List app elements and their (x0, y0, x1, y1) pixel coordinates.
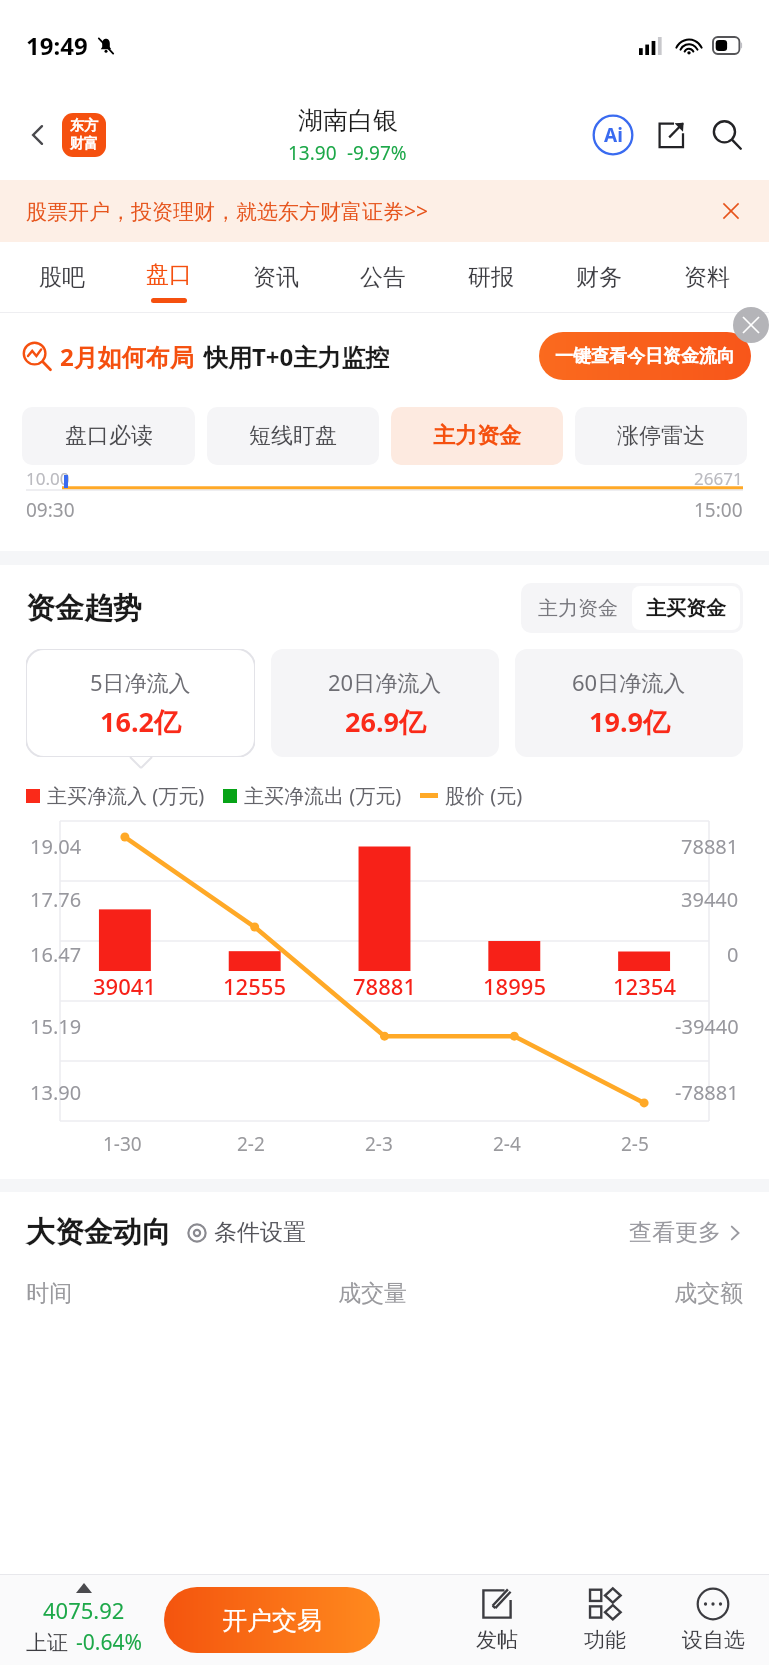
staticText: 一键查看今日资金流向 (555, 345, 735, 368)
staticText: 13.90 (30, 1079, 82, 1106)
button[interactable]: 4075.92 (16, 1583, 152, 1657)
staticText: 16.47 (30, 941, 82, 968)
button[interactable]: Close ad (733, 307, 769, 343)
staticText: 盘口必读 (65, 422, 153, 450)
staticText: 成交量 (338, 1279, 407, 1308)
staticText: 39440 (681, 886, 739, 913)
button[interactable]: Back (18, 115, 58, 155)
button[interactable]: 60日净流入 (515, 649, 743, 757)
staticText: -78881 (675, 1079, 739, 1106)
staticText: 财务 (576, 263, 622, 292)
staticText: 78881 (353, 971, 416, 1001)
button[interactable]: 主力资金 (524, 586, 632, 630)
staticText: 股吧 (39, 263, 85, 292)
button[interactable]: 功能 (565, 1587, 645, 1653)
staticText: 主买净流入 (万元) (47, 782, 205, 809)
button[interactable]: 5日净流入 (26, 649, 255, 757)
staticText: 17.76 (30, 886, 82, 913)
staticText: 09:30 (26, 497, 75, 523)
staticText: 资料 (684, 263, 730, 292)
button[interactable]: Share (647, 111, 695, 159)
staticText: 主买资金 (646, 596, 726, 621)
button[interactable]: 股票开户，投资理财，就选东方财富证券>> (0, 180, 769, 242)
button[interactable]: East Money logo (62, 113, 106, 157)
staticText: 涨停雷达 (617, 422, 705, 450)
staticText: 19.9亿 (589, 703, 670, 740)
button[interactable]: 条件设置 (185, 1218, 306, 1247)
button[interactable]: 资讯 (222, 242, 329, 313)
button[interactable]: 资料 (653, 242, 761, 313)
staticText: 上证 (26, 1630, 68, 1656)
staticText: 研报 (468, 263, 514, 292)
staticText: 财富 (70, 135, 98, 153)
staticText: 主力资金 (538, 596, 618, 621)
staticText: 39041 (93, 971, 156, 1001)
button[interactable]: 股吧 (8, 242, 115, 313)
button[interactable]: 盘口必读 (22, 407, 195, 465)
button[interactable]: 设自选 (673, 1587, 753, 1653)
button[interactable]: 一键查看今日资金流向 (539, 332, 751, 380)
staticText: 时间 (26, 1279, 72, 1308)
staticText: 18995 (483, 971, 546, 1001)
staticText: 10.00 (26, 467, 70, 485)
staticText: 13.90 (288, 140, 337, 166)
staticText: 查看更多 (629, 1218, 721, 1247)
staticText: 股票开户，投资理财，就选东方财富证券>> (26, 197, 429, 226)
button[interactable]: 财务 (545, 242, 653, 313)
staticText: 1-30 (103, 1131, 142, 1157)
button[interactable]: 主买资金 (632, 586, 740, 630)
staticText: 26.9亿 (345, 703, 426, 740)
staticText: 2-4 (493, 1131, 521, 1157)
staticText: 快用T+0主力监控 (204, 340, 390, 373)
button[interactable]: 查看更多 (629, 1218, 743, 1247)
staticText: -9.97% (347, 140, 407, 166)
button[interactable]: Close banner (711, 191, 751, 231)
staticText: 5日净流入 (90, 667, 191, 697)
staticText: Ai (604, 122, 623, 148)
staticText: 功能 (584, 1627, 626, 1653)
button[interactable]: 涨停雷达 (575, 407, 747, 465)
button[interactable]: 主力资金 (391, 407, 563, 465)
staticText: 2-3 (365, 1131, 393, 1157)
staticText: 12555 (223, 971, 286, 1001)
staticText: 主力资金 (433, 422, 521, 450)
button[interactable]: AI assistant (589, 111, 637, 159)
staticText: 资金趋势 (26, 590, 142, 627)
button[interactable]: 公告 (329, 242, 437, 313)
staticText: -0.64% (76, 1628, 142, 1657)
staticText: 短线盯盘 (249, 422, 337, 450)
staticText: 东方 (70, 117, 98, 135)
button[interactable]: 20日净流入 (271, 649, 499, 757)
staticText: 26671 (694, 467, 743, 485)
staticText: 公告 (360, 263, 406, 292)
staticText: 2-2 (237, 1131, 265, 1157)
staticText: 78881 (681, 833, 739, 860)
staticText: 2-5 (621, 1131, 649, 1157)
button[interactable]: 盘口 (115, 242, 222, 313)
staticText: 19:49 (26, 29, 88, 62)
staticText: -39440 (675, 1013, 739, 1040)
staticText: 条件设置 (214, 1218, 306, 1247)
staticText: 4075.92 (43, 1595, 125, 1625)
staticText: 主买净流出 (万元) (244, 782, 402, 809)
button[interactable]: 湖南白银 (288, 105, 407, 166)
staticText: 15:00 (694, 497, 743, 523)
staticText: 开户交易 (222, 1605, 322, 1636)
staticText: 2月如何布局 (60, 340, 194, 373)
button[interactable]: 研报 (437, 242, 545, 313)
button[interactable]: 开户交易 (164, 1587, 380, 1653)
staticText: 盘口 (146, 260, 192, 289)
staticText: 0 (727, 941, 739, 968)
staticText: 12354 (613, 971, 676, 1001)
staticText: 16.2亿 (100, 703, 181, 740)
button[interactable]: 发帖 (457, 1587, 537, 1653)
staticText: 资讯 (253, 263, 299, 292)
staticText: 设自选 (682, 1627, 745, 1653)
staticText: 60日净流入 (572, 667, 686, 697)
staticText: 15.19 (30, 1013, 82, 1040)
button[interactable]: 短线盯盘 (207, 407, 379, 465)
staticText: 发帖 (476, 1627, 518, 1653)
button[interactable]: Search (703, 111, 751, 159)
staticText: 成交额 (674, 1279, 743, 1308)
staticText: 19.04 (30, 833, 82, 860)
